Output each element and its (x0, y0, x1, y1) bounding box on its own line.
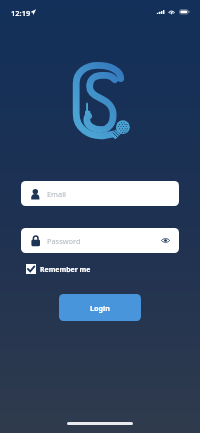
staticText: 12:19 (11, 8, 31, 18)
staticText: Email (47, 189, 66, 199)
staticText: Remember me (40, 265, 91, 274)
button[interactable]: Login (59, 294, 141, 321)
button[interactable]: Show password (158, 233, 173, 248)
button[interactable]: Password (21, 228, 179, 253)
staticText: Password (47, 236, 81, 246)
staticText: Login (90, 303, 110, 313)
button[interactable]: Remember me (23, 262, 97, 276)
button[interactable]: Email (21, 181, 179, 206)
